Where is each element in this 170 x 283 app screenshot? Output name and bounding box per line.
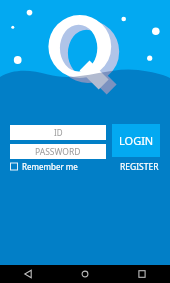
staticText: PASSWORD [35,146,81,158]
staticText: REGISTER [120,161,159,171]
button[interactable]: Recent apps [113,265,170,283]
button[interactable]: LOGIN [112,124,160,157]
staticText: LOGIN [119,133,154,148]
button[interactable]: PASSWORD [10,144,106,159]
staticText: ID [54,127,63,138]
button[interactable]: ID [10,125,106,140]
staticText: Remember me [22,161,78,172]
button[interactable]: Back [0,265,56,283]
button[interactable]: Home [56,265,113,283]
button[interactable]: Remember me [9,160,78,172]
button[interactable]: REGISTER [117,161,162,171]
